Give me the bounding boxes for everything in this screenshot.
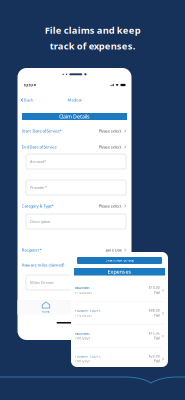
staticText: 10:10 [23, 82, 32, 88]
staticText: Back [24, 97, 33, 103]
staticText: WALGREENS [75, 286, 89, 290]
button[interactable]: Home [17, 300, 74, 314]
button[interactable]: End Date of Service [17, 143, 131, 151]
staticText: Home [42, 310, 50, 313]
staticText: Paid [154, 359, 160, 363]
staticText: Miles Driven [30, 280, 53, 285]
staticText: 7/01/2021 [75, 337, 91, 340]
button[interactable]: PODIATRY PLUS PC [71, 302, 168, 324]
staticText: File claims and keep track of expenses. [44, 24, 140, 52]
staticText: Paid [154, 291, 160, 294]
staticText: Recipient* [21, 247, 41, 253]
staticText: End Date of Service [21, 144, 56, 150]
staticText: Please select [99, 128, 122, 134]
button[interactable]: Provider* [26, 180, 126, 195]
button[interactable]: Back [17, 96, 33, 104]
button[interactable]: Description [26, 214, 126, 229]
staticText: Provider* [30, 185, 47, 190]
staticText: Please select [99, 203, 122, 209]
staticText: 7/01/2021 [75, 359, 91, 363]
staticText: Medical [67, 97, 81, 103]
staticText: Claim Details [59, 113, 90, 120]
staticText: $15.95 [149, 332, 160, 335]
staticText: How are miles claimed? [21, 262, 64, 268]
staticText: $20.00 [149, 355, 160, 358]
button[interactable]: Miles Driven [26, 275, 126, 290]
button[interactable]: Category & Type* [17, 202, 131, 210]
button[interactable]: Start Date of Service* [17, 127, 131, 135]
staticText: Jane Doe [106, 247, 122, 253]
staticText: WALGREENS [75, 332, 89, 335]
staticText: Profile [98, 310, 108, 313]
button[interactable]: Recipient* [17, 246, 131, 254]
button[interactable]: PODIATRY PLUS PC [71, 348, 168, 370]
button[interactable]: How are miles claimed? [17, 261, 131, 269]
button[interactable]: Profile [74, 300, 131, 314]
button[interactable]: Amount* [26, 154, 126, 169]
staticText: Paid [154, 337, 160, 340]
staticText: $10.00 [149, 286, 160, 290]
staticText: PODIATRY PLUS PC [75, 355, 101, 358]
staticText: Description [30, 219, 50, 224]
staticText: PODIATRY PLUS PC [75, 309, 101, 312]
staticText: $88.00 [149, 309, 160, 312]
button[interactable]: CREATE NEW EXPENSE [77, 257, 162, 264]
staticText: Please select [99, 144, 122, 150]
staticText: Amount* [30, 159, 46, 164]
staticText: Paid [154, 314, 160, 317]
staticText: 11/23/2021 [75, 291, 93, 294]
staticText: 11/20/2021 [75, 314, 93, 317]
button[interactable]: WALGREENS [71, 279, 168, 301]
button[interactable]: WALGREENS [71, 325, 168, 347]
staticText: Expenses [107, 268, 131, 275]
staticText: Start Date of Service* [21, 128, 61, 134]
staticText: CREATE NEW EXPENSE [105, 259, 133, 262]
staticText: Category & Type* [21, 203, 53, 209]
